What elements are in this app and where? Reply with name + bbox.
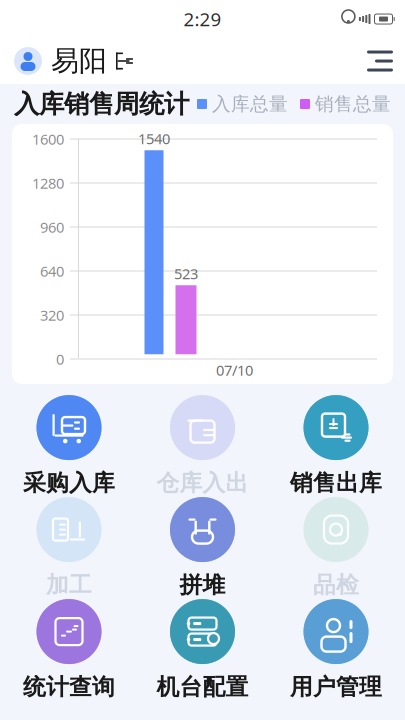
staticText: 入库总量 bbox=[212, 92, 288, 115]
button[interactable]: 易阳 bbox=[0, 38, 134, 84]
button[interactable]: 仓库入出 bbox=[142, 396, 262, 496]
staticText: 2:29 bbox=[183, 7, 221, 31]
staticText: 仓库入出 bbox=[156, 469, 248, 497]
staticText: 销售出库 bbox=[290, 469, 382, 497]
staticText: 07/10 bbox=[216, 360, 253, 380]
staticText: 统计查询 bbox=[23, 673, 115, 701]
staticText: 用户管理 bbox=[290, 673, 382, 701]
staticText: 0 bbox=[56, 349, 64, 369]
button[interactable]: Menu bbox=[355, 38, 405, 84]
button[interactable]: 品检 bbox=[276, 498, 396, 598]
button[interactable]: 统计查询 bbox=[9, 600, 129, 700]
button[interactable]: 采购入库 bbox=[9, 396, 129, 496]
staticText: 523 bbox=[174, 264, 198, 283]
button[interactable]: 用户管理 bbox=[276, 600, 396, 700]
staticText: 销售总量 bbox=[315, 92, 391, 115]
button[interactable]: 销售出库 bbox=[276, 396, 396, 496]
staticText: 机台配置 bbox=[156, 673, 248, 701]
staticText: 640 bbox=[40, 261, 64, 281]
staticText: 1600 bbox=[32, 129, 64, 149]
staticText: 960 bbox=[40, 217, 64, 237]
staticText: 320 bbox=[40, 305, 64, 325]
button[interactable]: 加工 bbox=[9, 498, 129, 598]
staticText: 品检 bbox=[313, 571, 359, 599]
button[interactable]: 拼堆 bbox=[142, 498, 262, 598]
staticText: 易阳 bbox=[51, 44, 107, 78]
staticText: 1540 bbox=[138, 129, 170, 148]
button[interactable]: 机台配置 bbox=[142, 600, 262, 700]
staticText: 1280 bbox=[32, 173, 64, 193]
staticText: 入库销售周统计 bbox=[14, 88, 189, 119]
staticText: 采购入库 bbox=[23, 469, 115, 497]
staticText: 加工 bbox=[46, 571, 92, 599]
staticText: 拼堆 bbox=[179, 571, 225, 599]
